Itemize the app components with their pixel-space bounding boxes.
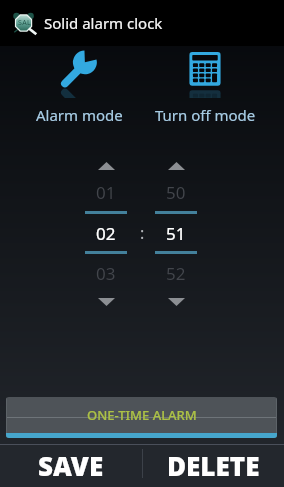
button[interactable]: DELETE (142, 444, 284, 487)
staticText: 01 (96, 181, 116, 204)
staticText: 03 (96, 262, 116, 285)
button[interactable]: Decrease Minute (155, 291, 197, 313)
button[interactable]: Alarm mode (16, 50, 142, 125)
staticText: Alarm mode (36, 105, 123, 125)
button[interactable]: Turn off mode (142, 50, 268, 125)
staticText: 52 (166, 262, 186, 285)
staticText: 50 (166, 181, 186, 204)
staticText: Turn off mode (155, 105, 256, 125)
staticText: SAVE (38, 448, 104, 483)
staticText: 51 (166, 222, 186, 245)
button[interactable]: Minute (155, 220, 197, 246)
staticText: DELETE (167, 448, 260, 483)
staticText: : (140, 222, 145, 244)
button[interactable]: Increase Hour (85, 155, 127, 177)
button[interactable]: SAVE (0, 444, 142, 487)
button[interactable]: SAL (0, 0, 284, 46)
button[interactable]: ONE-TIME ALARM (6, 397, 277, 438)
button[interactable]: Hour (85, 220, 127, 246)
staticText: ONE-TIME ALARM (87, 406, 197, 424)
staticText: 02 (96, 222, 116, 245)
button[interactable]: Increase Minute (155, 155, 197, 177)
staticText: SAL (18, 18, 31, 28)
button[interactable]: Decrease Hour (85, 291, 127, 313)
staticText: Solid alarm clock (44, 13, 163, 33)
